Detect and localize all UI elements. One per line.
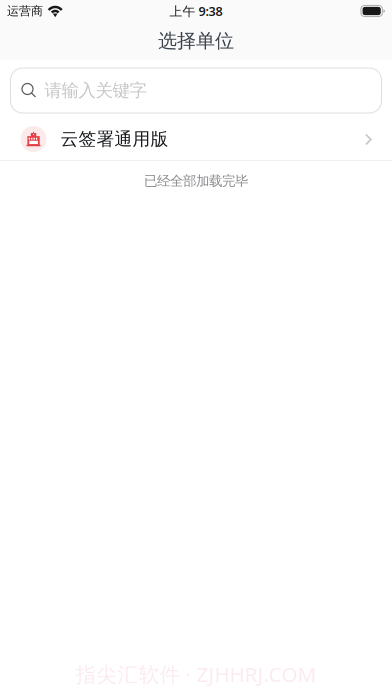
button[interactable]: 请输入关键字 — [10, 68, 381, 113]
button[interactable]: 云签署通用版 — [0, 118, 392, 160]
staticText: 选择单位 — [158, 29, 234, 53]
staticText: 请输入关键字 — [44, 79, 146, 101]
staticText: 指尖汇软件 · ZJHHRJ.COM — [75, 660, 316, 688]
staticText: 运营商 — [7, 3, 43, 18]
staticText: 云签署通用版 — [60, 128, 168, 150]
staticText: 已经全部加载完毕 — [144, 172, 248, 189]
staticText: 上午 9:38 — [169, 2, 222, 20]
